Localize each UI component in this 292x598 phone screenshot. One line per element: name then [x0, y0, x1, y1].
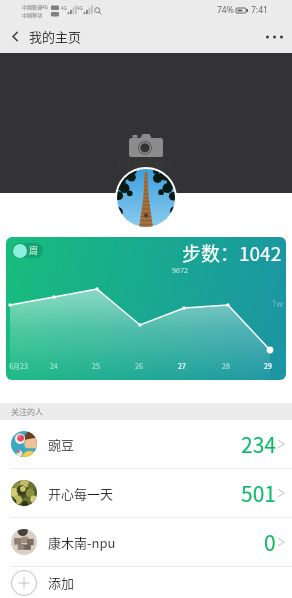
- staticText: 康木南-npu: [48, 533, 116, 552]
- button[interactable]: Change cover photo: [129, 134, 163, 157]
- staticText: 4G: [77, 5, 83, 11]
- staticText: 开心每一天: [48, 484, 114, 503]
- staticText: 7:41: [251, 4, 268, 16]
- other: Add: [11, 570, 37, 596]
- staticText: 0: [264, 527, 276, 557]
- staticText: 周: [29, 244, 39, 257]
- staticText: 中国联通4G: [22, 3, 49, 10]
- staticText: 1w: [272, 298, 283, 309]
- staticText: 27: [178, 361, 186, 371]
- staticText: 4G: [61, 5, 67, 11]
- staticText: 我的主页: [29, 27, 82, 46]
- staticText: 添加: [48, 573, 75, 592]
- staticText: 28: [222, 361, 230, 371]
- staticText: 豌豆: [48, 435, 75, 454]
- staticText: 29: [264, 361, 272, 371]
- button[interactable]: More options: [257, 35, 292, 39]
- staticText: 24: [50, 361, 58, 371]
- staticText: 6月23: [9, 361, 28, 371]
- button[interactable]: Back: [0, 27, 88, 46]
- button[interactable]: 康木南-npu: [0, 518, 292, 566]
- button[interactable]: 豌豆: [0, 420, 292, 468]
- button[interactable]: 开心每一天: [0, 469, 292, 517]
- staticText: 234: [241, 429, 276, 459]
- staticText: 25: [92, 361, 100, 371]
- staticText: 点击更换封面图片: [118, 159, 174, 169]
- staticText: 中国移动: [22, 11, 43, 18]
- staticText: 26: [135, 361, 143, 371]
- staticText: 关注的人: [11, 406, 43, 418]
- button[interactable]: Profile photo: [115, 167, 177, 229]
- staticText: 9672: [172, 266, 189, 276]
- button[interactable]: Add: [0, 567, 292, 598]
- button[interactable]: 周: [6, 237, 286, 380]
- other: Back: [9, 30, 22, 43]
- staticText: 步数：1042: [182, 239, 282, 267]
- staticText: 74%: [217, 4, 234, 16]
- button[interactable]: 周: [12, 243, 43, 258]
- staticText: 501: [241, 478, 276, 508]
